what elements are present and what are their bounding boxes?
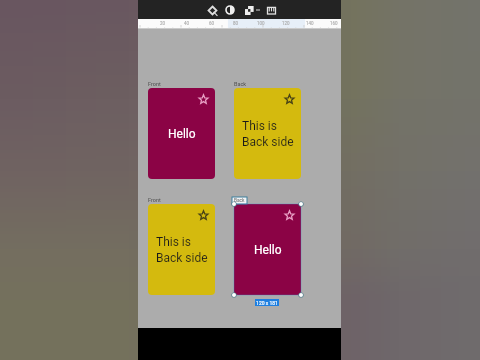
staticText: This is Back side	[242, 119, 294, 149]
staticText: Front	[148, 81, 161, 87]
button[interactable]: Shapes	[243, 4, 255, 16]
staticText: 160	[330, 21, 338, 26]
staticText: 60	[209, 21, 215, 26]
button[interactable]: Hello	[148, 88, 215, 179]
staticText: 120 x 181	[256, 300, 278, 306]
button[interactable]: Hello	[234, 204, 301, 295]
staticText: Back	[234, 81, 247, 87]
staticText: 100	[257, 21, 265, 26]
staticText: 20	[160, 21, 166, 26]
staticText: 120	[282, 21, 290, 26]
staticText: 140	[306, 21, 314, 26]
staticText: Front	[148, 197, 161, 203]
button[interactable]: Back	[232, 197, 247, 204]
staticText: Back	[234, 198, 245, 204]
button[interactable]: Fill tool	[206, 4, 218, 16]
button[interactable]: 120 x 181	[255, 299, 279, 306]
button[interactable]: This is Back side	[234, 88, 301, 179]
button[interactable]: Contrast	[224, 4, 236, 16]
staticText: 40	[184, 21, 190, 26]
button[interactable]: This is Back side	[148, 204, 215, 295]
staticText: This is Back side	[156, 235, 208, 265]
button[interactable]: Grid	[265, 4, 277, 16]
staticText: Hello	[254, 243, 282, 257]
staticText: Hello	[168, 127, 196, 141]
staticText: 80	[233, 21, 239, 26]
